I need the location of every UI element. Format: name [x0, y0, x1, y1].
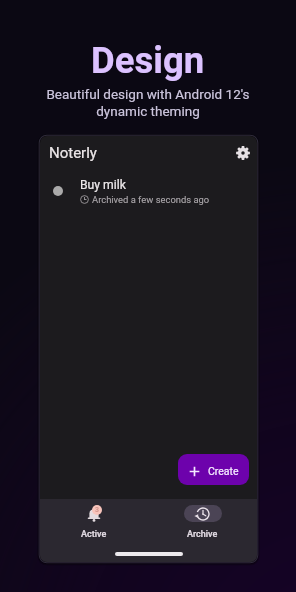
staticText: Beautiful design with Android 12's dynam… [46, 86, 250, 120]
staticText: Archive [187, 529, 218, 540]
button[interactable]: Buy milk [40, 170, 257, 212]
staticText: Create [208, 465, 239, 477]
staticText: Design [91, 39, 205, 82]
button[interactable]: Archive [148, 499, 257, 540]
staticText: Buy milk [80, 178, 126, 192]
staticText: Archived a few seconds ago [92, 194, 210, 205]
button[interactable]: Create [178, 454, 249, 485]
button[interactable]: 3 [40, 499, 148, 540]
staticText: 3 [95, 506, 99, 514]
staticText: Active [81, 529, 107, 540]
staticText: Noterly [49, 144, 97, 162]
button[interactable]: Settings [230, 140, 256, 166]
